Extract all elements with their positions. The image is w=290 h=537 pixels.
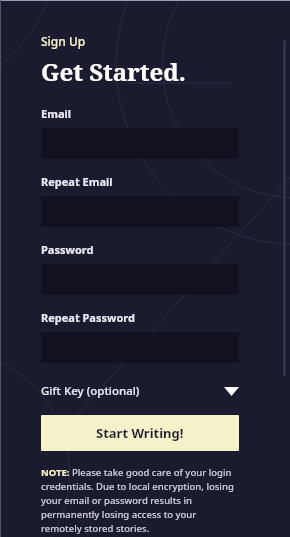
staticText: Get Started. [41,55,186,88]
other: Expand gift key [224,387,239,396]
staticText: NOTE: Please take good care of your logi… [41,466,239,535]
button[interactable]: Start Writing! [41,415,239,451]
button[interactable]: Gift Key (optional) [41,380,239,402]
staticText: Password [41,242,94,257]
staticText: Start Writing! [96,424,184,442]
staticText: Email [41,106,72,121]
staticText: Repeat Email [41,174,113,189]
staticText: Sign Up [41,33,86,49]
staticText: Gift Key (optional) [41,383,140,399]
staticText: Repeat Password [41,310,135,325]
